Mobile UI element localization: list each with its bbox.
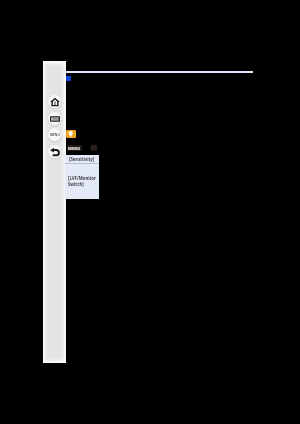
staticText: MENU [68, 146, 81, 151]
button[interactable]: Menu [46, 126, 63, 143]
button[interactable]: Home [46, 93, 63, 110]
staticText: [LVF/Monitor Switch] [68, 175, 96, 188]
staticText: [Sensitivity] [69, 156, 95, 162]
button[interactable]: Display [46, 110, 63, 127]
button[interactable]: Back [46, 143, 63, 160]
staticText: MENU [50, 133, 60, 137]
